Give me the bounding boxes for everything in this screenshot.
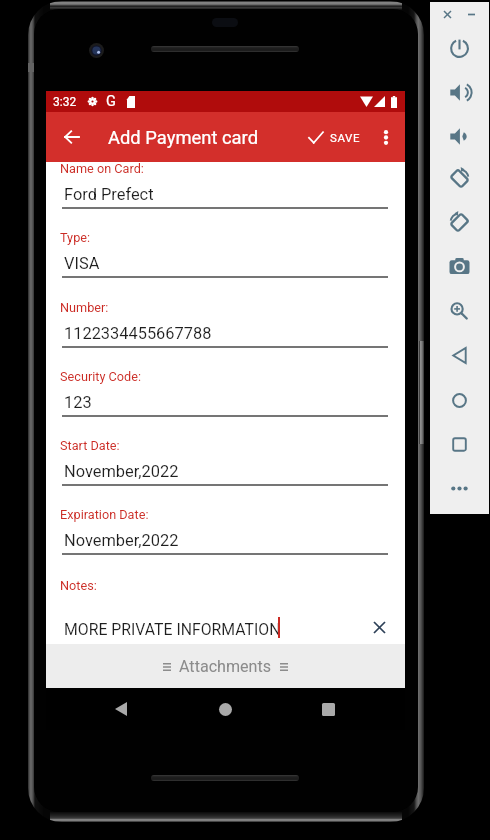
button[interactable]: Notes: <box>46 578 405 636</box>
staticText: G <box>106 93 116 110</box>
button[interactable]: Rotate right <box>443 206 475 238</box>
button[interactable]: Overview <box>443 428 475 460</box>
button[interactable]: Home <box>219 703 232 716</box>
button[interactable]: Name on Card: <box>46 161 405 211</box>
button[interactable]: Start Date: <box>46 438 405 488</box>
staticText: November,2022 <box>64 462 179 481</box>
button[interactable]: Close <box>444 11 451 18</box>
staticText: November,2022 <box>64 531 179 550</box>
staticText: Add Payment card <box>108 127 259 149</box>
button[interactable]: Navigate up <box>54 120 88 154</box>
staticText: 123 <box>64 393 92 412</box>
button[interactable]: Back <box>443 339 475 371</box>
button[interactable]: Recents <box>322 703 335 716</box>
button[interactable]: Home <box>443 384 475 416</box>
button[interactable]: Expiration Date: <box>46 507 405 557</box>
staticText: Ford Prefect <box>64 185 154 204</box>
button[interactable]: More options <box>369 120 403 154</box>
staticText: SAVE <box>330 131 361 144</box>
staticText: Security Code: <box>60 369 142 384</box>
button[interactable]: Volume up <box>443 76 475 108</box>
button[interactable]: Power <box>443 32 475 64</box>
button[interactable]: Zoom <box>443 294 475 326</box>
button[interactable]: Security Code: <box>46 369 405 419</box>
staticText: Start Date: <box>60 438 120 453</box>
button[interactable]: Attachments <box>46 644 405 688</box>
button[interactable]: Type: <box>46 230 405 280</box>
button[interactable]: More <box>443 472 475 504</box>
button[interactable]: Minimise <box>468 12 475 17</box>
staticText: MORE PRIVATE INFORMATION <box>64 620 281 639</box>
staticText: Name on Card: <box>60 161 144 176</box>
button[interactable]: Rotate left <box>443 162 475 194</box>
staticText: Notes: <box>60 578 97 593</box>
staticText: VISA <box>64 254 100 273</box>
staticText: Expiration Date: <box>60 507 149 522</box>
button[interactable]: SAVE <box>308 112 361 162</box>
staticText: Number: <box>60 300 109 315</box>
button[interactable]: Volume down <box>443 120 475 152</box>
button[interactable]: Clear <box>368 616 390 638</box>
button[interactable]: Back <box>115 702 127 716</box>
button[interactable]: Screenshot <box>443 250 475 282</box>
staticText: 3:32 <box>53 95 77 109</box>
staticText: 1122334455667788 <box>64 324 212 343</box>
staticText: Attachments <box>179 657 272 676</box>
staticText: Type: <box>60 230 91 245</box>
button[interactable]: Number: <box>46 300 405 350</box>
